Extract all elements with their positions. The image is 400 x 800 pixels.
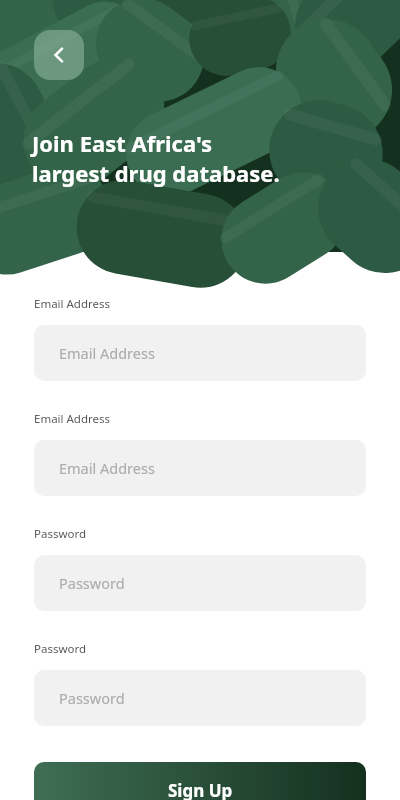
staticText: Email Address bbox=[59, 458, 155, 478]
button[interactable]: Password bbox=[34, 555, 366, 611]
staticText: Join East Africa's bbox=[32, 128, 213, 158]
button[interactable]: Email Address bbox=[34, 440, 366, 496]
staticText: Sign Up bbox=[168, 779, 233, 800]
staticText: Email Address bbox=[59, 343, 155, 363]
staticText: Email Address bbox=[34, 411, 111, 427]
button[interactable]: Email Address bbox=[34, 325, 366, 381]
staticText: largest drug database. bbox=[32, 158, 280, 188]
button[interactable]: Password bbox=[34, 670, 366, 726]
button[interactable]: Back bbox=[34, 30, 84, 80]
staticText: Password bbox=[34, 641, 87, 657]
staticText: Password bbox=[59, 688, 125, 708]
staticText: Email Address bbox=[34, 296, 111, 312]
staticText: Password bbox=[59, 573, 125, 593]
staticText: Password bbox=[34, 526, 87, 542]
button[interactable]: Sign Up bbox=[34, 762, 366, 800]
